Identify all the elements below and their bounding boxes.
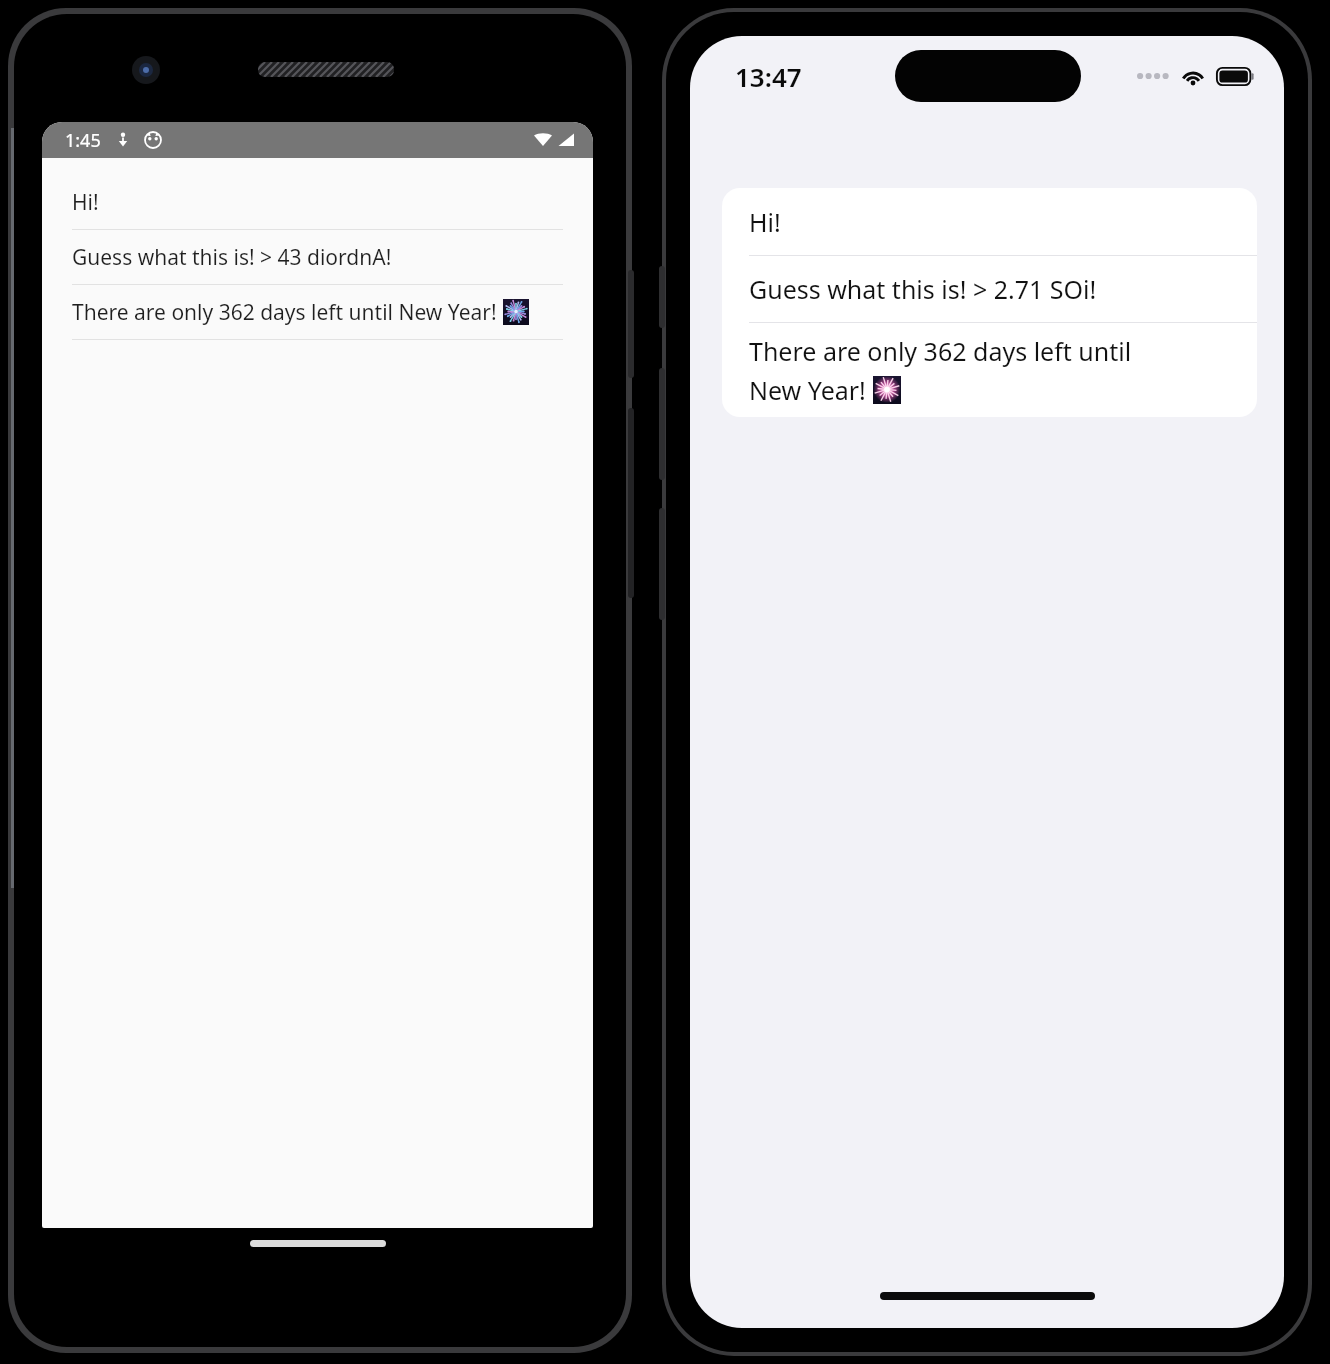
- staticText: Guess what this is! > 43 diordnA!: [72, 243, 392, 272]
- staticText: There are only 362 days left until New Y…: [72, 298, 503, 327]
- button[interactable]: Guess what this is! > 2.71 SOi!: [722, 256, 1257, 323]
- staticText: Guess what this is! > 2.71 SOi!: [749, 272, 1097, 306]
- button[interactable]: Hi!: [42, 175, 593, 230]
- staticText: There are only 362 days left until: [749, 334, 1132, 368]
- other: Firework: [873, 376, 901, 404]
- button[interactable]: There are only 362 days left until: [722, 323, 1257, 417]
- staticText: Hi!: [72, 188, 99, 217]
- staticText: Hi!: [749, 205, 781, 239]
- staticText: 1:45: [65, 128, 101, 153]
- other: Firework: [503, 299, 529, 325]
- button[interactable]: Hi!: [722, 188, 1257, 256]
- staticText: 13:47: [735, 59, 802, 94]
- button[interactable]: There are only 362 days left until New Y…: [42, 285, 593, 340]
- staticText: New Year!: [749, 373, 873, 407]
- button[interactable]: Guess what this is! > 43 diordnA!: [42, 230, 593, 285]
